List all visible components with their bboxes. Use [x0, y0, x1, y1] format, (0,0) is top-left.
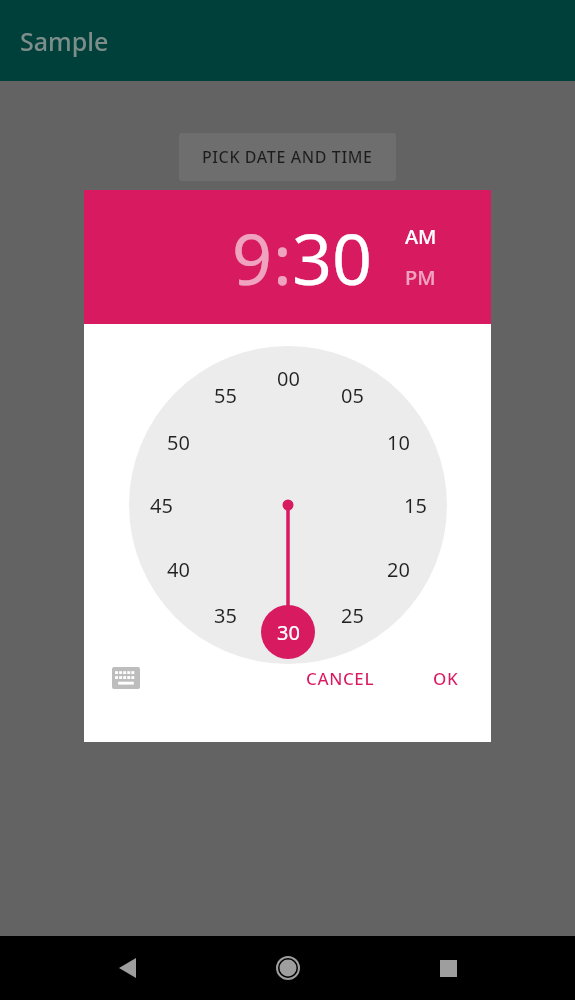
button[interactable]: 00	[266, 364, 310, 392]
button[interactable]: 55	[203, 381, 247, 409]
staticText: AM	[405, 223, 437, 250]
button[interactable]: PICK DATE AND TIME	[179, 133, 396, 181]
staticText: 50	[167, 429, 190, 456]
button[interactable]: 05	[330, 381, 374, 409]
button[interactable]: 50	[156, 428, 200, 456]
staticText: 30	[277, 619, 300, 646]
staticText: OK	[433, 667, 459, 690]
button[interactable]: 45	[139, 491, 183, 519]
button[interactable]: 35	[203, 601, 247, 629]
staticText: 25	[341, 602, 364, 629]
button[interactable]: 10	[376, 428, 420, 456]
button[interactable]: PM	[405, 264, 436, 291]
button[interactable]: 25	[330, 601, 374, 629]
staticText: CANCEL	[306, 667, 375, 690]
button[interactable]: 30	[266, 618, 310, 646]
staticText: 35	[214, 602, 237, 629]
button[interactable]: Back	[105, 946, 149, 990]
staticText: 15	[404, 492, 427, 519]
button[interactable]: OK	[419, 657, 473, 700]
button[interactable]: CANCEL	[292, 657, 389, 700]
staticText: :	[273, 210, 292, 305]
staticText: 40	[167, 556, 190, 583]
staticText: 9	[232, 210, 273, 305]
staticText: 10	[387, 429, 410, 456]
button[interactable]: Home	[266, 946, 310, 990]
button[interactable]: Recent apps	[426, 946, 470, 990]
staticText: PICK DATE AND TIME	[202, 146, 373, 168]
staticText: 05	[341, 382, 364, 409]
button[interactable]: 15	[393, 491, 437, 519]
staticText: Sample	[20, 24, 109, 58]
button[interactable]: Switch to text input mode	[106, 658, 146, 698]
staticText: 30	[292, 210, 373, 305]
button[interactable]: 40	[156, 555, 200, 583]
staticText: 20	[387, 556, 410, 583]
staticText: 45	[150, 492, 173, 519]
button[interactable]: 20	[376, 555, 420, 583]
staticText: 55	[214, 382, 237, 409]
staticText: 00	[277, 365, 300, 392]
button[interactable]: 30	[292, 210, 373, 305]
button[interactable]: AM	[405, 223, 437, 250]
staticText: PM	[405, 264, 436, 291]
button[interactable]: 9	[232, 210, 273, 305]
